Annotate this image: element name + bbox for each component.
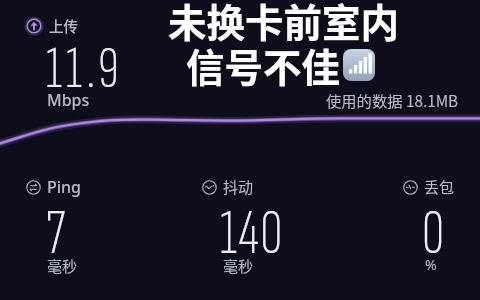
staticText: 毫秒: [47, 255, 78, 277]
staticText: 丢包: [424, 176, 455, 198]
button[interactable]: Upload: [26, 15, 78, 36]
staticText: Ping: [47, 176, 82, 198]
staticText: 7: [46, 197, 67, 272]
staticText: Mbps: [47, 89, 90, 111]
button[interactable]: 抖动: [143, 176, 313, 284]
other: Ping: [26, 180, 41, 195]
other: Upload: [26, 18, 42, 34]
staticText: 使用的数据 18.1MB: [326, 89, 459, 111]
staticText: 抖动: [223, 176, 254, 198]
staticText: 上传: [49, 15, 78, 36]
staticText: 140: [220, 197, 284, 272]
staticText: 毫秒: [223, 255, 254, 277]
button[interactable]: 丢包: [344, 176, 480, 284]
staticText: %: [425, 255, 437, 274]
other: 丢包: [403, 180, 418, 195]
staticText: 未换卡前室内: [168, 0, 400, 48]
staticText: 信号不佳: [186, 37, 341, 93]
button[interactable]: Ping: [0, 176, 139, 284]
other: 抖动: [202, 180, 217, 195]
staticText: 0: [422, 197, 446, 272]
staticText: 11.9: [46, 34, 123, 105]
